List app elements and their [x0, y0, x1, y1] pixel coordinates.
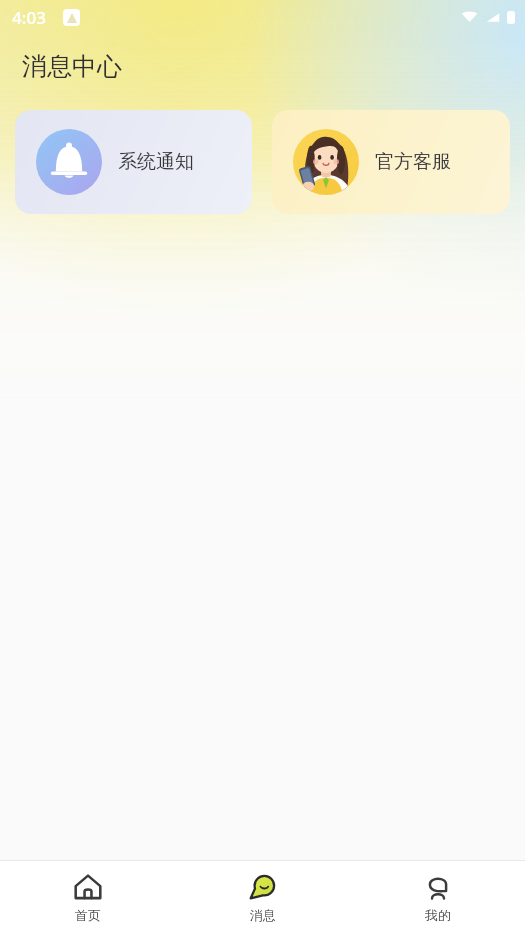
button[interactable]: 消息	[175, 861, 350, 933]
staticText: 系统通知	[118, 150, 194, 174]
staticText: 消息中心	[22, 51, 122, 82]
staticText: 消息	[250, 907, 276, 923]
button[interactable]: 系统通知	[15, 110, 252, 214]
button[interactable]: 官方客服	[272, 110, 510, 214]
staticText: 我的	[425, 907, 451, 923]
button[interactable]: 我的	[350, 861, 525, 933]
staticText: 4:03	[12, 6, 46, 29]
staticText: 官方客服	[375, 150, 451, 174]
staticText: 首页	[75, 907, 101, 923]
button[interactable]: 首页	[0, 861, 175, 933]
